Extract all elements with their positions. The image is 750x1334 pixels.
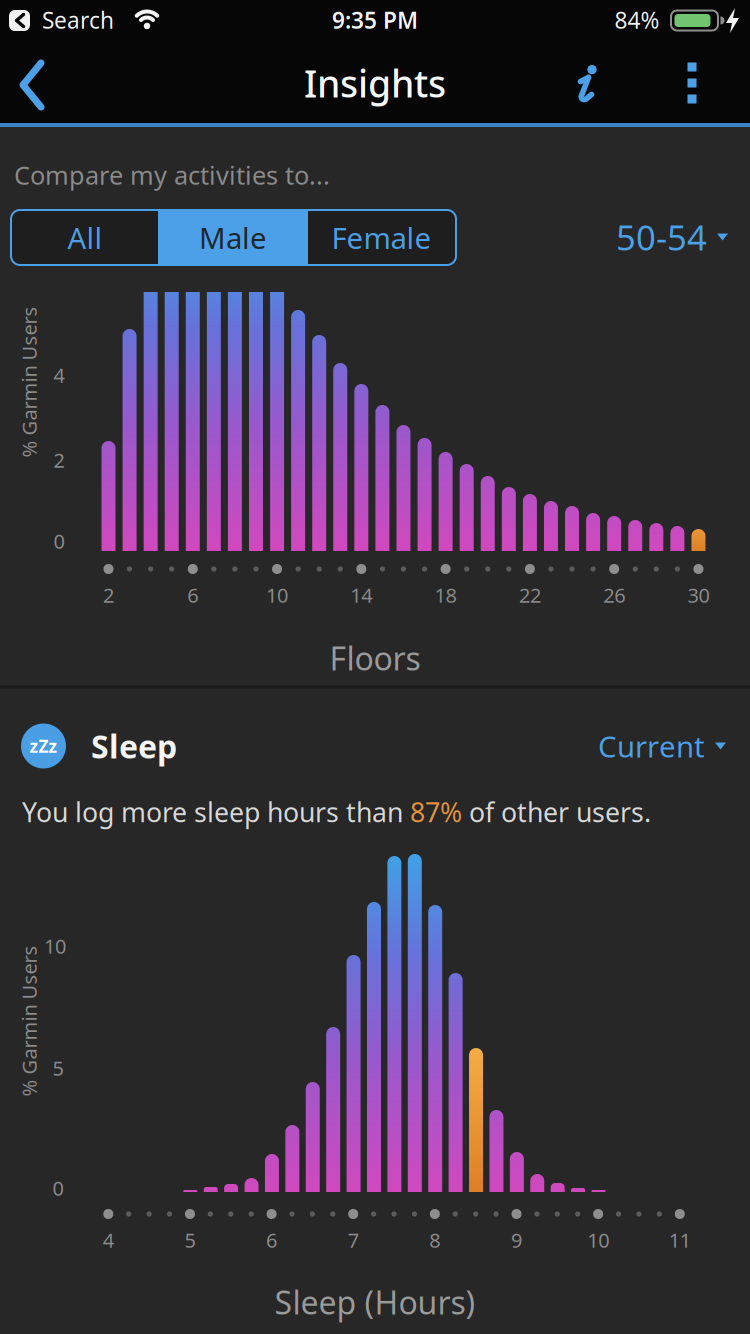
staticText: All — [67, 218, 102, 257]
button[interactable]: All — [11, 210, 159, 265]
staticText: 22 — [519, 582, 541, 608]
staticText: Sleep (Hours) — [274, 1281, 475, 1323]
button[interactable]: Female — [307, 210, 456, 265]
staticText: 14 — [350, 582, 372, 608]
staticText: 10 — [266, 582, 288, 608]
button[interactable]: Male — [159, 210, 307, 265]
staticText: Female — [331, 218, 431, 257]
staticText: Insights — [304, 58, 446, 108]
staticText: 2 — [103, 582, 114, 608]
button[interactable]: More options — [672, 55, 712, 111]
staticText: of other users. — [462, 794, 651, 830]
staticText: 4 — [53, 362, 64, 388]
staticText: 30 — [687, 582, 709, 608]
staticText: 0 — [52, 1175, 63, 1201]
staticText: % Garmin Users — [0, 369, 104, 395]
staticText: % Garmin Users — [0, 1008, 104, 1034]
staticText: zZz — [29, 734, 57, 757]
staticText: 6 — [266, 1227, 277, 1253]
staticText: 11 — [669, 1227, 691, 1253]
staticText: 8 — [429, 1227, 440, 1253]
staticText: 2 — [53, 447, 64, 473]
staticText: 9:35 PM — [332, 5, 418, 35]
staticText: Sleep — [91, 725, 177, 767]
staticText: 18 — [435, 582, 457, 608]
staticText: 9 — [511, 1227, 522, 1253]
button[interactable]: Back — [11, 53, 55, 117]
staticText: 0 — [53, 528, 64, 554]
staticText: 10 — [44, 933, 66, 959]
staticText: Male — [199, 218, 267, 257]
staticText: 84% — [614, 5, 659, 35]
staticText: 6 — [187, 582, 198, 608]
staticText: Search — [42, 5, 114, 35]
staticText: Current — [598, 726, 705, 765]
staticText: 10 — [587, 1227, 609, 1253]
staticText: 87% — [410, 794, 462, 830]
staticText: 50-54 — [616, 214, 707, 260]
staticText: Floors — [329, 637, 420, 679]
staticText: 5 — [52, 1055, 63, 1081]
staticText: 4 — [103, 1227, 114, 1253]
staticText: Compare my activities to... — [14, 158, 330, 192]
staticText: 7 — [348, 1227, 359, 1253]
button[interactable]: Info — [563, 63, 609, 103]
button[interactable]: Current — [598, 726, 726, 765]
staticText: You log more sleep hours than — [22, 794, 410, 830]
staticText: 5 — [184, 1227, 195, 1253]
staticText: 26 — [603, 582, 625, 608]
button[interactable]: 50-54 — [616, 214, 728, 260]
